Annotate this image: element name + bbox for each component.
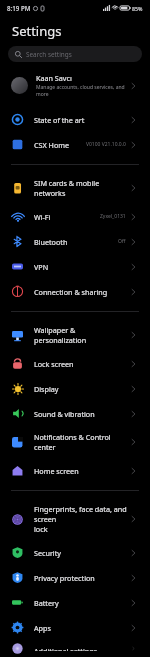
- button[interactable]: Notifications & Control center: [0, 426, 150, 458]
- staticText: Connection & sharing: [34, 287, 108, 297]
- staticText: V0100 V21.10.0.0: [86, 141, 126, 148]
- button[interactable]: Wi-Fi: [0, 204, 150, 229]
- button[interactable]: Fingerprints, face data, and screen: [0, 498, 150, 540]
- button[interactable]: Connection & sharing: [0, 279, 150, 304]
- button[interactable]: CSX Home: [0, 132, 150, 157]
- button[interactable]: Home screen: [0, 458, 150, 483]
- button[interactable]: Display: [0, 376, 150, 401]
- staticText: lock: [34, 524, 48, 534]
- staticText: Lock screen: [34, 359, 74, 369]
- staticText: Security: [34, 548, 61, 558]
- button[interactable]: Security: [0, 540, 150, 565]
- staticText: Apps: [34, 623, 51, 633]
- button[interactable]: Wallpaper & personalization: [0, 319, 150, 351]
- staticText: Wallpaper & personalization: [34, 325, 129, 345]
- staticText: State of the art: [34, 115, 85, 125]
- staticText: Display: [34, 384, 59, 394]
- staticText: Fingerprints, face data, and screen: [34, 504, 129, 524]
- staticText: Additional settings: [34, 646, 98, 651]
- staticText: Settings: [12, 22, 62, 40]
- staticText: Manage accounts, cloud services, and mor…: [36, 84, 129, 98]
- button[interactable]: Lock screen: [0, 351, 150, 376]
- button[interactable]: Kaan Savcı: [0, 69, 150, 102]
- staticText: 8:19 PM: [7, 4, 31, 12]
- staticText: VPN: [34, 262, 49, 272]
- staticText: Notifications & Control center: [34, 432, 129, 452]
- button[interactable]: Additional settings: [0, 640, 150, 657]
- staticText: Zyxel_0131: [100, 213, 126, 220]
- button[interactable]: Apps: [0, 615, 150, 640]
- staticText: Home screen: [34, 466, 79, 476]
- staticText: Sound & vibration: [34, 409, 95, 419]
- button[interactable]: State of the art: [0, 107, 150, 132]
- button[interactable]: Bluetooth: [0, 229, 150, 254]
- staticText: Kaan Savcı: [36, 73, 72, 83]
- button[interactable]: SIM cards & mobile networks: [0, 172, 150, 204]
- button[interactable]: Search settings: [8, 46, 142, 62]
- staticText: Wi-Fi: [34, 212, 51, 222]
- staticText: Off: [118, 238, 126, 245]
- staticText: 85%: [132, 5, 143, 12]
- button[interactable]: Battery: [0, 590, 150, 615]
- staticText: Battery: [34, 598, 59, 608]
- staticText: Bluetooth: [34, 237, 68, 247]
- button[interactable]: Privacy protection: [0, 565, 150, 590]
- staticText: Privacy protection: [34, 573, 95, 583]
- staticText: Search settings: [26, 50, 72, 59]
- staticText: SIM cards & mobile networks: [34, 178, 129, 198]
- button[interactable]: Sound & vibration: [0, 401, 150, 426]
- staticText: CSX Home: [34, 140, 70, 150]
- button[interactable]: VPN: [0, 254, 150, 279]
